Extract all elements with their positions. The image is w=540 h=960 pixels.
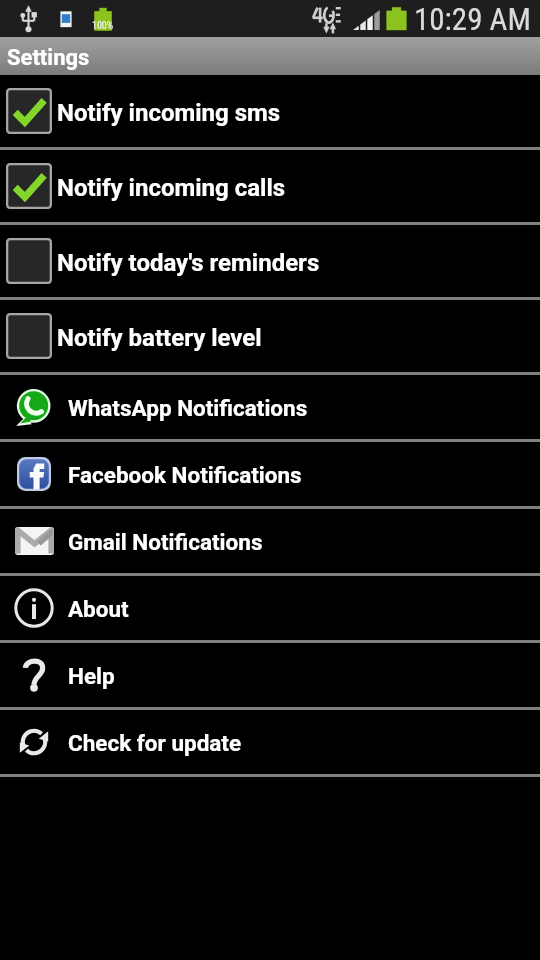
- staticText: Facebook Notifications: [68, 462, 302, 488]
- staticText: About: [68, 596, 129, 622]
- button[interactable]: Gmail Notifications: [0, 509, 540, 573]
- button[interactable]: Check for update: [0, 710, 540, 774]
- staticText: Notify incoming sms: [57, 99, 281, 127]
- staticText: Gmail Notifications: [68, 529, 263, 555]
- staticText: Notify incoming calls: [57, 174, 286, 202]
- staticText: Help: [68, 663, 115, 689]
- button[interactable]: About: [0, 576, 540, 640]
- staticText: 10:29 AM: [414, 1, 531, 37]
- button[interactable]: WhatsApp Notifications: [0, 375, 540, 439]
- staticText: Check for update: [68, 730, 242, 756]
- button[interactable]: Help: [0, 643, 540, 707]
- button[interactable]: Notify battery level: [0, 300, 540, 372]
- button[interactable]: Notify incoming calls: [0, 150, 540, 222]
- staticText: WhatsApp Notifications: [68, 395, 308, 421]
- button[interactable]: Facebook Notifications: [0, 442, 540, 506]
- button[interactable]: Notify today's reminders: [0, 225, 540, 297]
- staticText: Notify battery level: [57, 324, 262, 352]
- button[interactable]: Notify incoming sms: [0, 75, 540, 147]
- staticText: 100%: [92, 20, 114, 32]
- staticText: Settings: [7, 45, 90, 71]
- staticText: Notify today's reminders: [57, 249, 320, 277]
